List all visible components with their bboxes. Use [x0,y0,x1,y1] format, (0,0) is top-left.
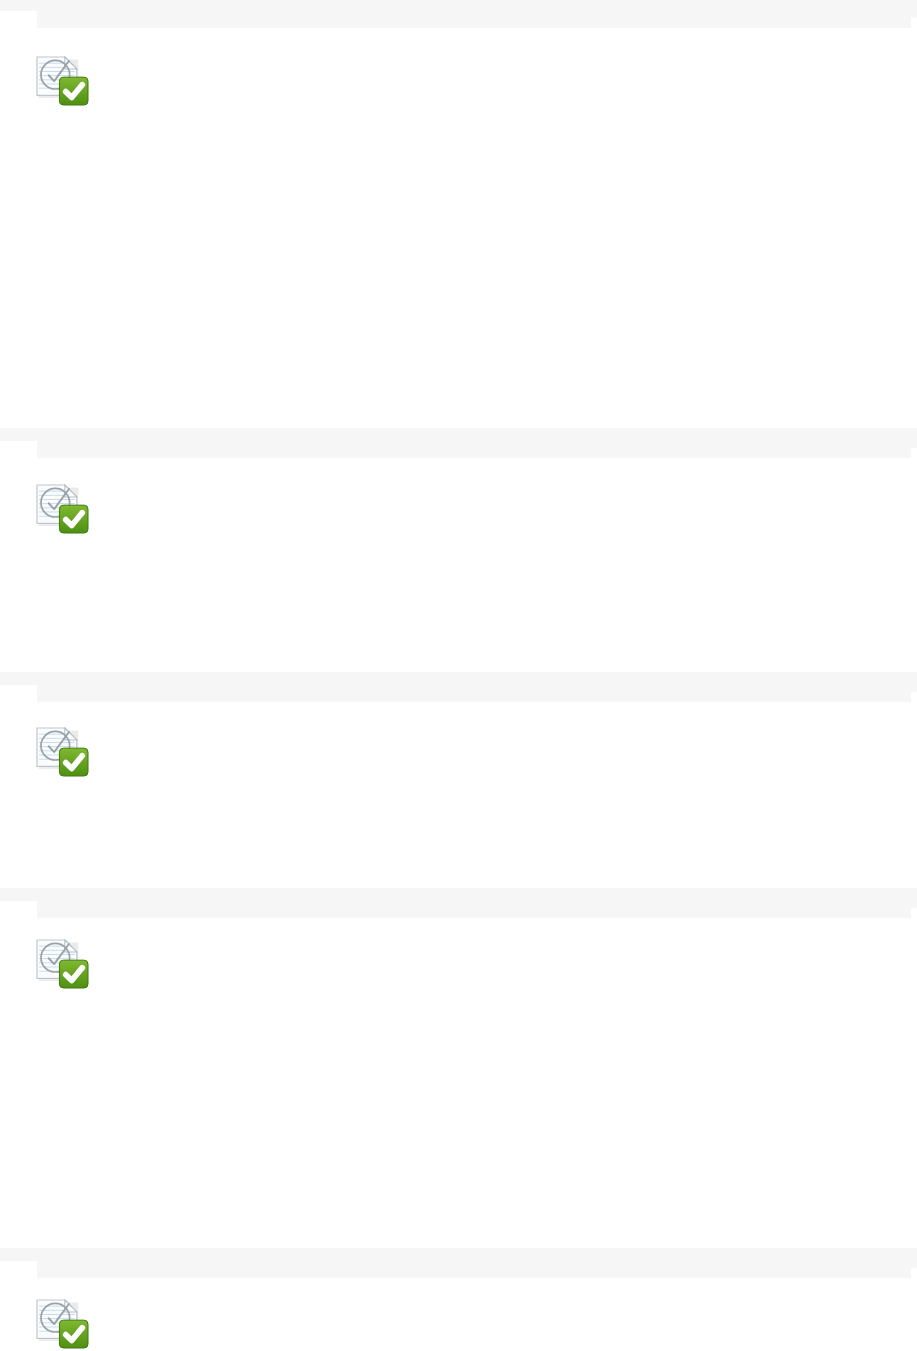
button[interactable]: Approved document 4 [37,940,88,988]
button[interactable]: Approved document 3 [37,728,88,776]
button[interactable]: Approved document 5 [37,1300,88,1348]
button[interactable]: Approved document 2 [37,485,88,533]
button[interactable]: Approved document 1 [37,57,88,105]
